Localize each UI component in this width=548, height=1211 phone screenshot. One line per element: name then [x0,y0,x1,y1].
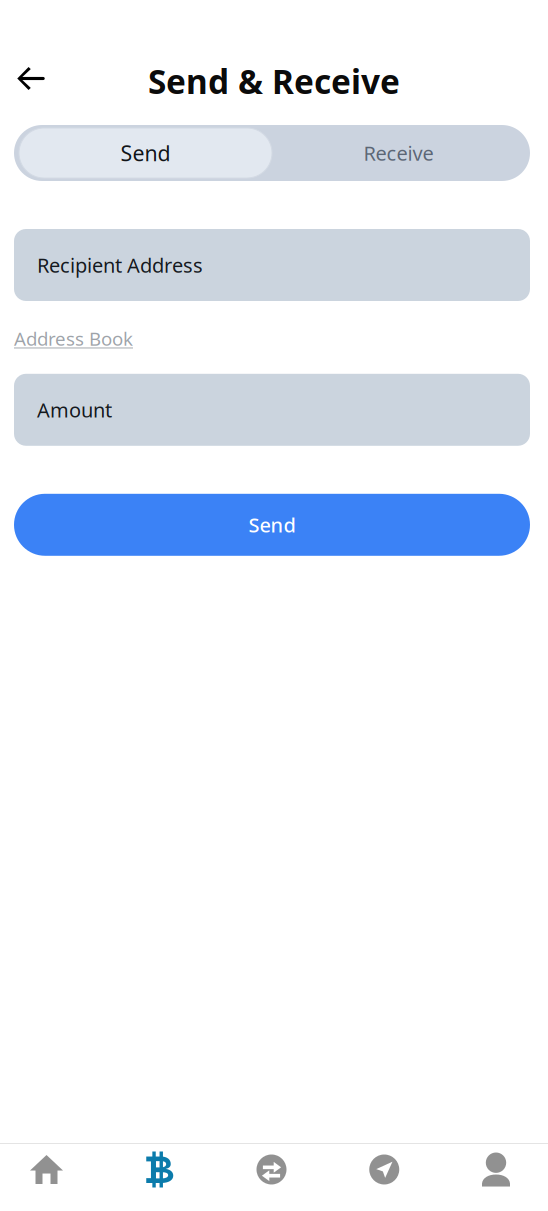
staticText: Send [248,511,295,538]
button[interactable]: Bitcoin [146,1144,174,1195]
staticText: Send & Receive [148,59,400,103]
button[interactable]: Receive [272,125,530,181]
staticText: Receive [363,140,433,166]
button[interactable]: Swap [256,1144,286,1195]
staticText: Address Book [14,326,133,351]
button[interactable]: Send [369,1144,399,1195]
staticText: Recipient Address [37,252,203,278]
button[interactable]: Back [0,57,62,105]
button[interactable]: Address Book [14,326,133,351]
staticText: Send [120,139,170,167]
button[interactable]: Send [14,125,272,181]
button[interactable]: Send [0,494,548,556]
button[interactable]: Home [30,1144,63,1195]
staticText: Amount [37,396,112,423]
button[interactable]: Profile [482,1144,510,1195]
